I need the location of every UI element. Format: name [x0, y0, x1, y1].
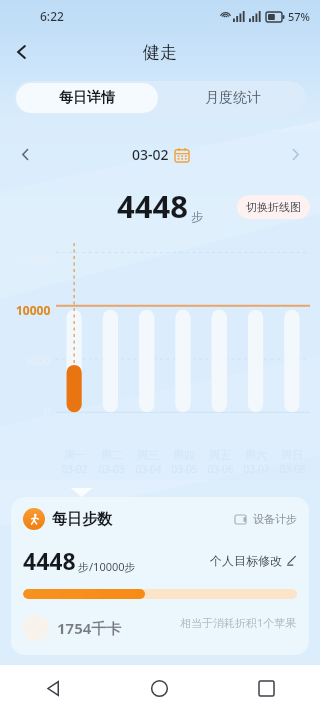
staticText: 个人目标修改 [210, 553, 282, 568]
staticText: 步/10000步 [78, 559, 136, 574]
staticText: 03-02 [132, 145, 169, 164]
staticText: 周二 [101, 448, 123, 462]
button[interactable]: 每日步数 [23, 508, 112, 530]
button[interactable]: Back [0, 665, 106, 711]
button[interactable]: 月度统计 [160, 81, 306, 115]
staticText: 1754千卡 [57, 618, 122, 638]
staticText: 每日详情 [59, 89, 115, 107]
button[interactable]: 每日详情 [16, 83, 158, 113]
staticText: 健走 [143, 42, 177, 63]
staticText: 5000 [25, 353, 51, 368]
button[interactable]: 03-02 [132, 145, 189, 164]
staticText: 03-05 [171, 462, 198, 476]
staticText: 03-04 [135, 462, 162, 476]
staticText: 03-06 [207, 462, 234, 476]
staticText: 03-03 [98, 462, 125, 476]
staticText: 相当于消耗折积1个苹果 [180, 615, 297, 630]
staticText: 10000 [16, 302, 51, 318]
staticText: 步 [191, 209, 203, 224]
staticText: 周一 [64, 448, 86, 462]
staticText: 设备计步 [253, 512, 297, 526]
button[interactable]: Previous day [8, 137, 42, 171]
button[interactable]: Back [0, 32, 44, 72]
staticText: 每日步数 [52, 510, 112, 529]
staticText: 6:22 [40, 8, 64, 24]
button[interactable]: Home [106, 665, 213, 711]
staticText: 月度统计 [205, 89, 261, 107]
staticText: 周四 [173, 448, 195, 462]
button[interactable]: Recent apps [213, 665, 320, 711]
staticText: 03-07 [243, 462, 270, 476]
staticText: 0 [44, 403, 51, 418]
button[interactable]: Next day [278, 137, 312, 171]
staticText: 切换折线图 [246, 200, 301, 214]
staticText: 周五 [209, 448, 231, 462]
staticText: 57% [288, 9, 310, 24]
staticText: 4448 [117, 185, 188, 227]
staticText: 周日 [281, 448, 303, 462]
staticText: 03-02 [61, 462, 88, 476]
button[interactable]: 切换折线图 [237, 195, 310, 219]
staticText: 4448 [23, 545, 76, 576]
button[interactable]: 个人目标修改 [210, 553, 297, 568]
button[interactable]: 设备计步 [235, 512, 297, 526]
staticText: 周六 [245, 448, 267, 462]
staticText: 周三 [137, 448, 159, 462]
